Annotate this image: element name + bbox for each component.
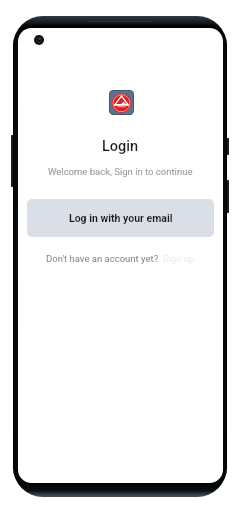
- button[interactable]: Log in with your email: [27, 199, 214, 237]
- staticText: Don't have an account yet?: [46, 253, 159, 264]
- staticText: Log in with your email: [69, 212, 173, 224]
- other: App logo: [109, 90, 134, 115]
- staticText: Sign up: [163, 253, 195, 264]
- button[interactable]: Sign up: [163, 253, 195, 264]
- staticText: Login: [102, 138, 139, 155]
- staticText: Welcome back, Sign in to continue: [48, 166, 193, 177]
